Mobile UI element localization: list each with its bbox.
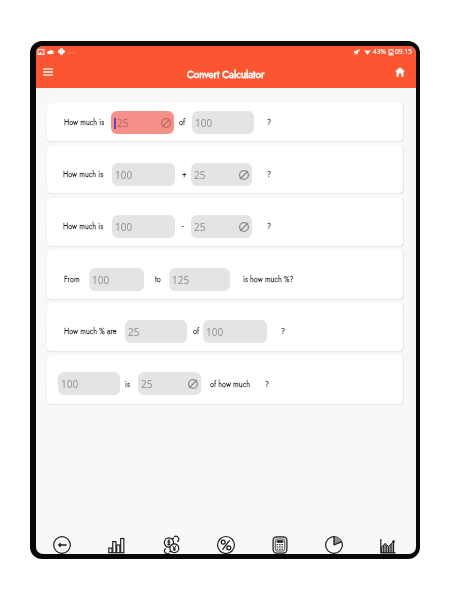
- staticText: 100: [206, 325, 224, 339]
- button[interactable]: How much % are: [47, 303, 403, 351]
- button[interactable]: 25: [111, 111, 174, 134]
- button[interactable]: Calculator: [254, 514, 308, 554]
- staticText: 25: [117, 116, 129, 130]
- button[interactable]: Currency converter: [146, 514, 200, 554]
- button[interactable]: 25: [191, 163, 252, 186]
- staticText: How much is: [64, 117, 105, 128]
- staticText: ?: [267, 117, 272, 128]
- staticText: How much % are: [64, 326, 117, 337]
- staticText: 25: [141, 377, 153, 391]
- button[interactable]: 100: [112, 163, 175, 186]
- staticText: 100: [115, 168, 133, 182]
- staticText: 25: [194, 220, 206, 234]
- staticText: 43%: [373, 47, 387, 56]
- staticText: How much is: [63, 221, 104, 232]
- staticText: 100: [195, 116, 213, 130]
- staticText: ?: [267, 221, 272, 232]
- staticText: Convert Calculator: [187, 67, 265, 81]
- staticText: -: [182, 221, 184, 232]
- staticText: How much is: [63, 169, 104, 180]
- staticText: 25: [128, 325, 140, 339]
- button[interactable]: Time: [308, 514, 362, 554]
- button[interactable]: 25: [125, 320, 187, 343]
- staticText: 100: [115, 220, 133, 234]
- button[interactable]: 125: [169, 268, 230, 291]
- staticText: 100: [61, 377, 79, 391]
- button[interactable]: Home: [387, 59, 413, 85]
- staticText: From: [64, 274, 80, 285]
- staticText: is how much %?: [243, 274, 294, 285]
- button[interactable]: Open navigation menu: [36, 59, 61, 85]
- button[interactable]: 25: [138, 372, 201, 395]
- staticText: of: [179, 117, 186, 128]
- staticText: +: [182, 169, 187, 180]
- staticText: ?: [281, 326, 286, 337]
- button[interactable]: 100: [203, 320, 267, 343]
- button[interactable]: How much is: [47, 146, 403, 193]
- button[interactable]: Percentage: [200, 514, 254, 554]
- button[interactable]: How much is: [47, 198, 403, 246]
- staticText: ?: [267, 169, 272, 180]
- button[interactable]: 100: [192, 111, 254, 134]
- button[interactable]: 100: [47, 355, 403, 404]
- staticText: 125: [172, 273, 190, 287]
- staticText: ?: [265, 379, 270, 390]
- button[interactable]: 25: [191, 215, 252, 238]
- staticText: to: [155, 274, 161, 285]
- staticText: of how much: [210, 379, 250, 390]
- button[interactable]: 100: [89, 268, 144, 291]
- staticText: 25: [194, 168, 206, 182]
- staticText: is: [125, 379, 130, 390]
- button[interactable]: Back: [36, 514, 91, 554]
- button[interactable]: From: [47, 250, 403, 299]
- button[interactable]: 100: [58, 372, 120, 395]
- button[interactable]: How much is: [47, 103, 403, 141]
- button[interactable]: 100: [112, 215, 175, 238]
- staticText: 09.15: [395, 47, 412, 56]
- staticText: of: [193, 326, 200, 337]
- button[interactable]: Chart: [362, 514, 416, 554]
- button[interactable]: Statistics: [91, 514, 146, 554]
- staticText: 100: [92, 273, 110, 287]
